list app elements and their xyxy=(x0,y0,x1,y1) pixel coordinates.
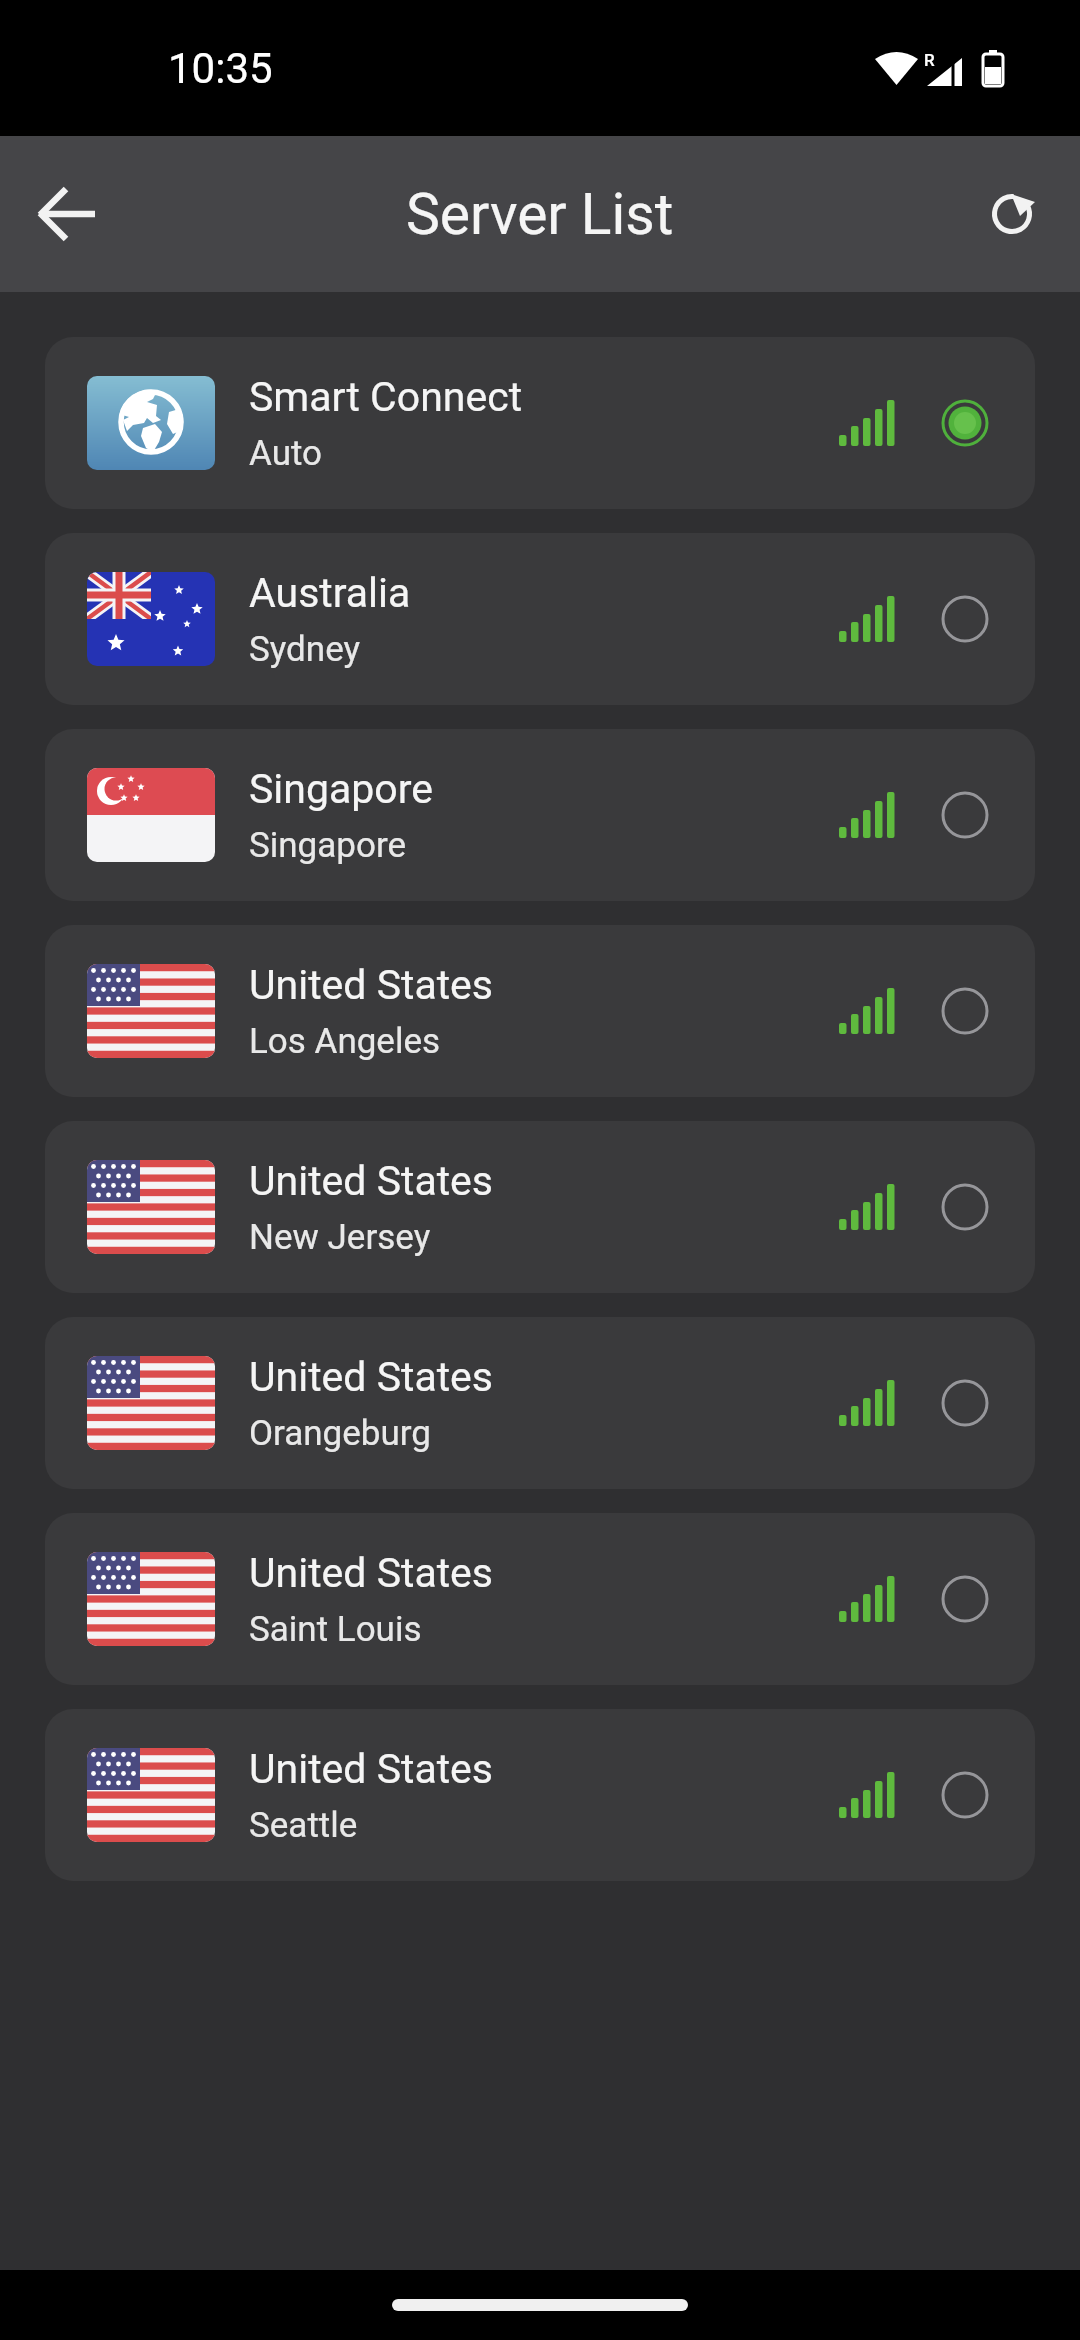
staticText: Auto xyxy=(249,433,323,474)
staticText: United States xyxy=(249,1549,494,1597)
staticText: United States xyxy=(249,1745,494,1793)
staticText: United States xyxy=(249,1353,494,1401)
staticText: 10:35 xyxy=(168,44,273,93)
button[interactable]: United States xyxy=(45,1513,1035,1685)
button[interactable]: United States xyxy=(45,1121,1035,1293)
button[interactable]: Australia xyxy=(45,533,1035,705)
button[interactable]: United States xyxy=(45,1709,1035,1881)
button[interactable] xyxy=(974,176,1050,252)
staticText: Seattle xyxy=(249,1805,358,1846)
staticText: Sydney xyxy=(249,629,361,670)
staticText: Australia xyxy=(249,569,411,617)
staticText: R xyxy=(924,50,935,70)
button[interactable]: United States xyxy=(45,1317,1035,1489)
staticText: Smart Connect xyxy=(249,373,523,421)
staticText: Singapore xyxy=(249,765,433,813)
staticText: Orangeburg xyxy=(249,1413,431,1454)
button[interactable]: Smart Connect xyxy=(45,337,1035,509)
button[interactable] xyxy=(30,176,106,252)
button[interactable]: Singapore xyxy=(45,729,1035,901)
staticText: United States xyxy=(249,961,494,1009)
staticText: Los Angeles xyxy=(249,1021,441,1062)
staticText: United States xyxy=(249,1157,494,1205)
staticText: New Jersey xyxy=(249,1217,431,1258)
staticText: Saint Louis xyxy=(249,1609,422,1650)
staticText: Singapore xyxy=(249,825,407,866)
staticText: Server List xyxy=(406,181,674,248)
button[interactable]: United States xyxy=(45,925,1035,1097)
